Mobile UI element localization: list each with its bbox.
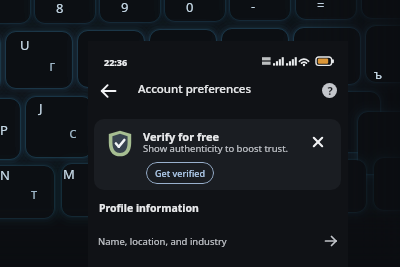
button[interactable]: Get verified: [146, 162, 214, 184]
staticText: Get verified: [155, 167, 206, 179]
staticText: ?: [327, 83, 333, 98]
button[interactable]: Dismiss: [307, 131, 329, 153]
button[interactable]: Help: [316, 77, 342, 103]
staticText: Show authenticity to boost trust.: [143, 142, 289, 155]
staticText: Account preferences: [138, 81, 252, 97]
button[interactable]: Name, location, and industry: [88, 220, 348, 262]
button[interactable]: Back: [95, 78, 121, 104]
staticText: Profile information: [99, 201, 199, 215]
staticText: Verify for free: [143, 129, 220, 144]
staticText: Name, location, and industry: [98, 235, 227, 248]
staticText: 22:36: [104, 56, 128, 68]
